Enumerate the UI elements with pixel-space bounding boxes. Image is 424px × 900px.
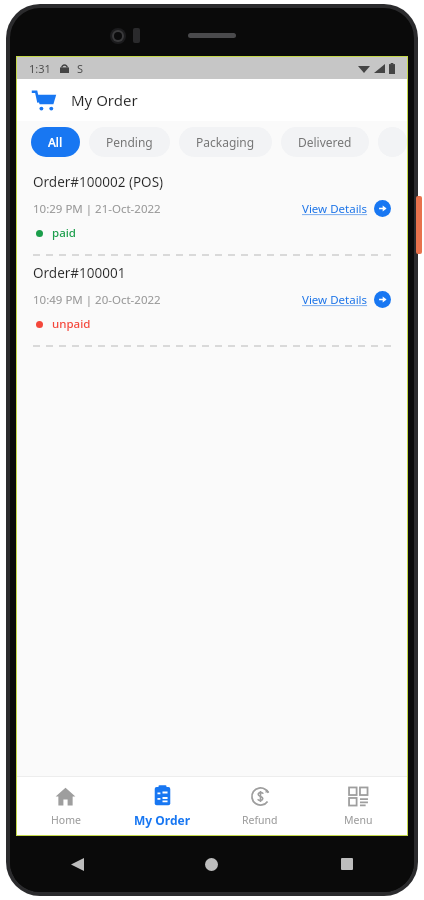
staticText: unpaid	[52, 316, 91, 332]
staticText: View Details	[302, 201, 368, 217]
button[interactable]: Pending	[89, 127, 170, 157]
staticText: Order#100001	[33, 264, 126, 282]
staticText: 1:31	[29, 61, 51, 76]
staticText: S	[77, 61, 84, 76]
staticText: Order#100002 (POS)	[33, 173, 164, 191]
button[interactable]: My Order	[114, 777, 211, 835]
staticText: My Order	[134, 812, 191, 828]
button[interactable]: Order#100001	[17, 256, 407, 347]
button[interactable]: Order#100002 (POS)	[17, 165, 407, 256]
button[interactable]: View Details	[302, 200, 391, 217]
staticText: All	[48, 134, 63, 150]
other: Back	[71, 858, 84, 871]
other: Refund	[250, 786, 271, 807]
other: Home	[55, 786, 76, 807]
staticText: Refund	[242, 813, 278, 827]
button[interactable]: Menu	[309, 777, 407, 835]
staticText: Delivered	[298, 134, 352, 150]
staticText: Pending	[106, 134, 153, 150]
other: Cart	[31, 87, 57, 113]
staticText: paid	[52, 225, 76, 241]
other: Menu	[348, 786, 369, 807]
staticText: 10:29 PM | 21-Oct-2022	[33, 201, 161, 217]
staticText: Packaging	[196, 134, 255, 150]
button[interactable]: Can	[378, 127, 407, 157]
other: Recents	[341, 858, 353, 870]
other: Home	[205, 858, 218, 871]
button[interactable]: Home	[17, 777, 114, 835]
button[interactable]: Refund	[211, 777, 309, 835]
staticText: My Order	[71, 90, 138, 110]
staticText: 10:49 PM | 20-Oct-2022	[33, 292, 161, 308]
other: My Order	[152, 785, 173, 806]
button[interactable]: Delivered	[281, 127, 369, 157]
button[interactable]: View Details	[302, 291, 391, 308]
staticText: View Details	[302, 292, 368, 308]
button[interactable]: All	[31, 127, 80, 157]
staticText: Home	[51, 813, 81, 827]
button[interactable]: Packaging	[179, 127, 272, 157]
staticText: Menu	[344, 813, 373, 827]
